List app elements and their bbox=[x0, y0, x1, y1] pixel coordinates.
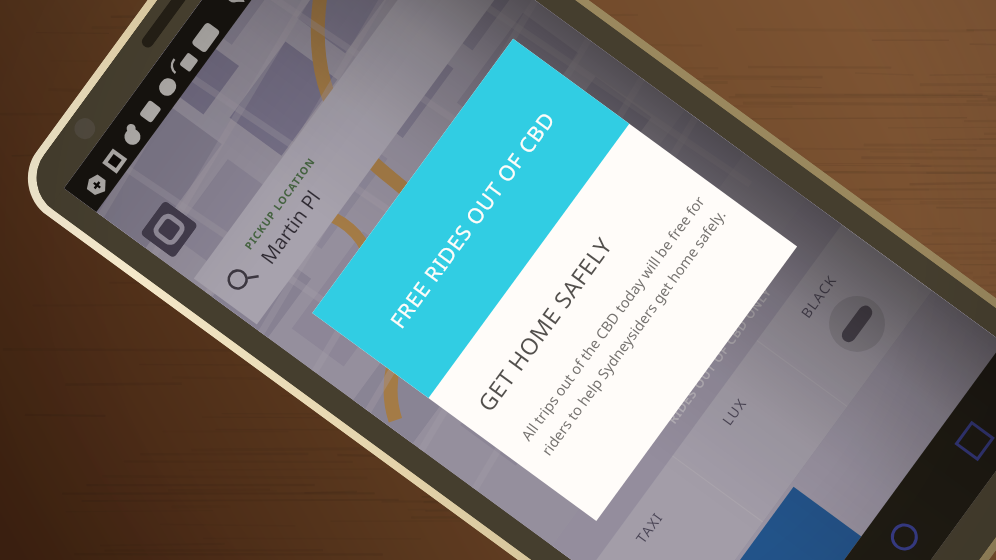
button[interactable]: Uber menu bbox=[140, 200, 198, 259]
button[interactable]: Home bbox=[874, 506, 935, 560]
button[interactable]: Recents bbox=[944, 410, 996, 472]
staticText: BLACK bbox=[796, 270, 841, 322]
staticText: All trips out of the CBD today will be f… bbox=[516, 190, 730, 459]
staticText: LUX bbox=[718, 393, 751, 429]
staticText: Martin Pl bbox=[254, 185, 326, 269]
staticText: FREE RIDES OUT OF CBD bbox=[384, 106, 562, 334]
staticText: RIDES OUT OF CBD ONLY bbox=[664, 284, 774, 426]
staticText: TAXI bbox=[631, 508, 667, 547]
button[interactable]: LUX bbox=[673, 340, 848, 522]
button[interactable]: BLACK bbox=[757, 225, 932, 406]
button[interactable]: FREE RIDES OUT OF CBD bbox=[312, 39, 797, 521]
button[interactable]: BLACK bbox=[705, 487, 861, 560]
staticText: GET HOME SAFELY bbox=[470, 230, 619, 417]
button[interactable]: PICKUP LOCATION bbox=[194, 0, 511, 325]
button[interactable]: TAXI bbox=[588, 455, 763, 560]
staticText: PICKUP LOCATION bbox=[241, 154, 318, 252]
